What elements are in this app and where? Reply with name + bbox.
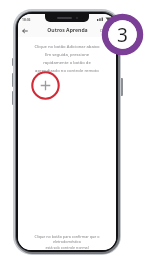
staticText: rapidamente o botão de (25, 60, 109, 66)
staticText: Clique no botão para confirmar que o ele… (20, 234, 114, 244)
button[interactable]: Adicionar (31, 71, 60, 100)
staticText: Em seguida, pressione (25, 52, 109, 58)
staticText: está sob controle normal (20, 245, 114, 250)
staticText: 3 (117, 22, 128, 48)
staticText: 18:36 (22, 17, 31, 21)
button[interactable]: Voltar (19, 25, 30, 36)
staticText: Deletar (100, 28, 114, 33)
button[interactable]: Deletar (100, 28, 114, 33)
button[interactable]: Etapa 3 (103, 15, 142, 54)
staticText: aprendizado no controle remoto (25, 68, 109, 74)
staticText: Outros Aprenda (47, 27, 88, 34)
staticText: Clique no botão Adicionar abaixo (25, 44, 109, 50)
